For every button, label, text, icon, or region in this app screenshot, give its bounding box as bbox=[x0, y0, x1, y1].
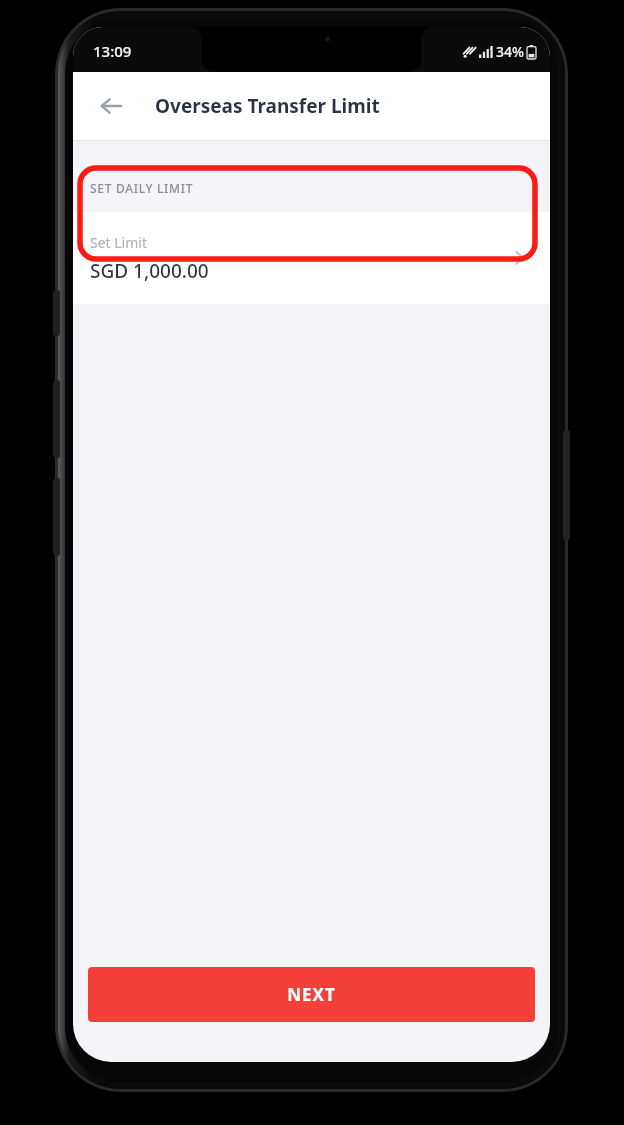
staticText: 13:09 bbox=[93, 41, 132, 61]
staticText: NEXT bbox=[287, 983, 336, 1006]
button[interactable]: Set Limit bbox=[73, 212, 550, 304]
staticText: 34% bbox=[496, 42, 524, 61]
staticText: Set Limit bbox=[90, 233, 147, 252]
staticText: Overseas Transfer Limit bbox=[155, 93, 380, 119]
staticText: SGD 1,000.00 bbox=[90, 258, 209, 284]
button[interactable]: NEXT bbox=[88, 967, 535, 1022]
staticText: SET DAILY LIMIT bbox=[90, 180, 194, 196]
button[interactable]: Back bbox=[89, 84, 133, 128]
